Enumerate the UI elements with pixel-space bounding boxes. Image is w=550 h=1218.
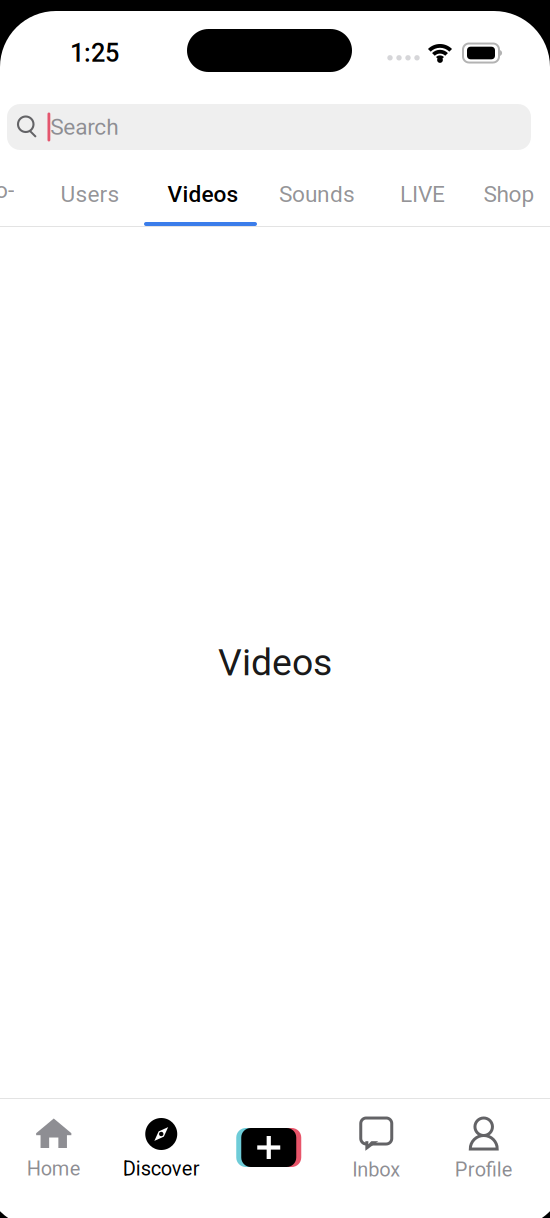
button[interactable]: Top — [0, 150, 20, 226]
staticText: Profile — [455, 1158, 513, 1181]
button[interactable]: Users — [0, 150, 119, 226]
button[interactable]: Videos — [0, 150, 238, 226]
button[interactable]: Shop — [0, 150, 529, 226]
staticText: Sounds — [279, 181, 355, 208]
staticText: Shop — [483, 181, 534, 208]
button[interactable]: Inbox — [322, 1099, 430, 1218]
staticText: Videos — [218, 641, 332, 684]
staticText: Videos — [167, 181, 238, 208]
staticText: Top — [0, 177, 14, 230]
button[interactable]: Home — [0, 1099, 107, 1218]
staticText: Discover — [123, 1157, 200, 1180]
button[interactable]: Profile — [430, 1099, 537, 1218]
staticText: 1:25 — [70, 38, 119, 68]
staticText: Search — [50, 114, 118, 140]
staticText: Inbox — [352, 1158, 400, 1181]
button[interactable]: Sounds — [0, 150, 355, 226]
staticText: LIVE — [400, 181, 445, 208]
button[interactable]: Create — [215, 1099, 322, 1218]
button[interactable]: LIVE — [0, 150, 445, 226]
button[interactable]: Discover — [107, 1099, 215, 1218]
staticText: Home — [27, 1157, 81, 1180]
button[interactable]: Search — [7, 104, 531, 150]
staticText: Users — [60, 181, 119, 208]
